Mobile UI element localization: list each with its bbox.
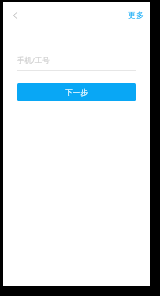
staticText: 更多 xyxy=(128,10,144,20)
staticText: 手机/工号 xyxy=(17,55,50,65)
button[interactable]: 更多 xyxy=(128,10,144,20)
staticText: 下一步 xyxy=(65,88,88,97)
button[interactable]: 下一步 xyxy=(17,83,136,101)
button[interactable]: Back xyxy=(8,8,22,22)
button[interactable]: 手机/工号 xyxy=(17,53,136,71)
